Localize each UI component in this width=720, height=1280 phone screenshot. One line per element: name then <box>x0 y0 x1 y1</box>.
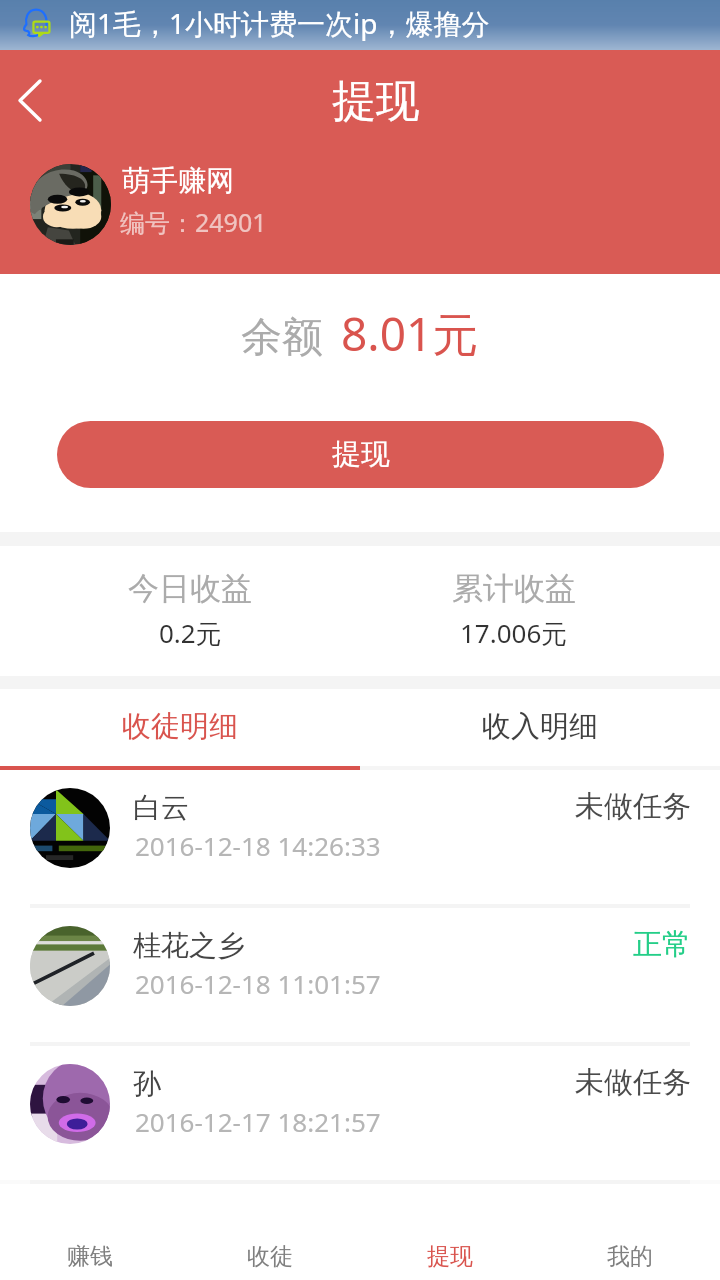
staticText: 萌手赚网 <box>122 163 234 198</box>
staticText: 8.01元 <box>341 302 479 365</box>
staticText: 2016-12-18 11:01:57 <box>135 966 381 1001</box>
button[interactable]: 我的 <box>540 1184 720 1280</box>
button[interactable]: 提现 <box>57 421 664 488</box>
staticText: 提现 <box>332 436 390 473</box>
staticText: 0.2元 <box>159 615 222 651</box>
staticText: 收入明细 <box>482 708 598 745</box>
staticText: 未做任务 <box>575 1064 691 1101</box>
staticText: 未做任务 <box>575 788 691 825</box>
button[interactable]: 萌手赚网 <box>0 154 720 258</box>
staticText: 余额 <box>241 312 323 364</box>
staticText: 赚钱 <box>67 1242 113 1271</box>
button[interactable]: 提现 <box>360 1184 540 1280</box>
button[interactable]: 孙 <box>0 1046 720 1184</box>
button[interactable]: 赚钱 <box>0 1184 180 1280</box>
staticText: 编号：24901 <box>120 205 267 239</box>
staticText: 收徒 <box>247 1242 293 1271</box>
staticText: 我的 <box>607 1242 653 1271</box>
staticText: 今日收益 <box>128 569 252 608</box>
staticText: 桂花之乡 <box>133 928 245 963</box>
staticText: 2016-12-17 18:21:57 <box>135 1104 381 1139</box>
staticText: 提现 <box>427 1242 473 1271</box>
staticText: 17.006元 <box>460 615 568 651</box>
button[interactable]: 白云 <box>0 770 720 908</box>
staticText: 2016-12-18 14:26:33 <box>135 828 381 863</box>
button[interactable]: Back <box>0 50 60 120</box>
button[interactable]: 累计收益 <box>424 546 604 676</box>
staticText: 正常 <box>633 926 691 963</box>
staticText: 孙 <box>133 1066 161 1101</box>
staticText: 白云 <box>133 790 189 825</box>
button[interactable]: 收入明细 <box>360 689 720 770</box>
button[interactable]: 桂花之乡 <box>0 908 720 1046</box>
button[interactable]: 今日收益 <box>100 546 280 676</box>
staticText: 提现 <box>332 74 420 129</box>
staticText: 收徒明细 <box>122 708 238 745</box>
staticText: 累计收益 <box>452 569 576 608</box>
button[interactable]: 收徒 <box>180 1184 360 1280</box>
staticText: 阅1毛，1小时计费一次ip，爆撸分 <box>69 4 490 42</box>
button[interactable]: 收徒明细 <box>0 689 360 770</box>
